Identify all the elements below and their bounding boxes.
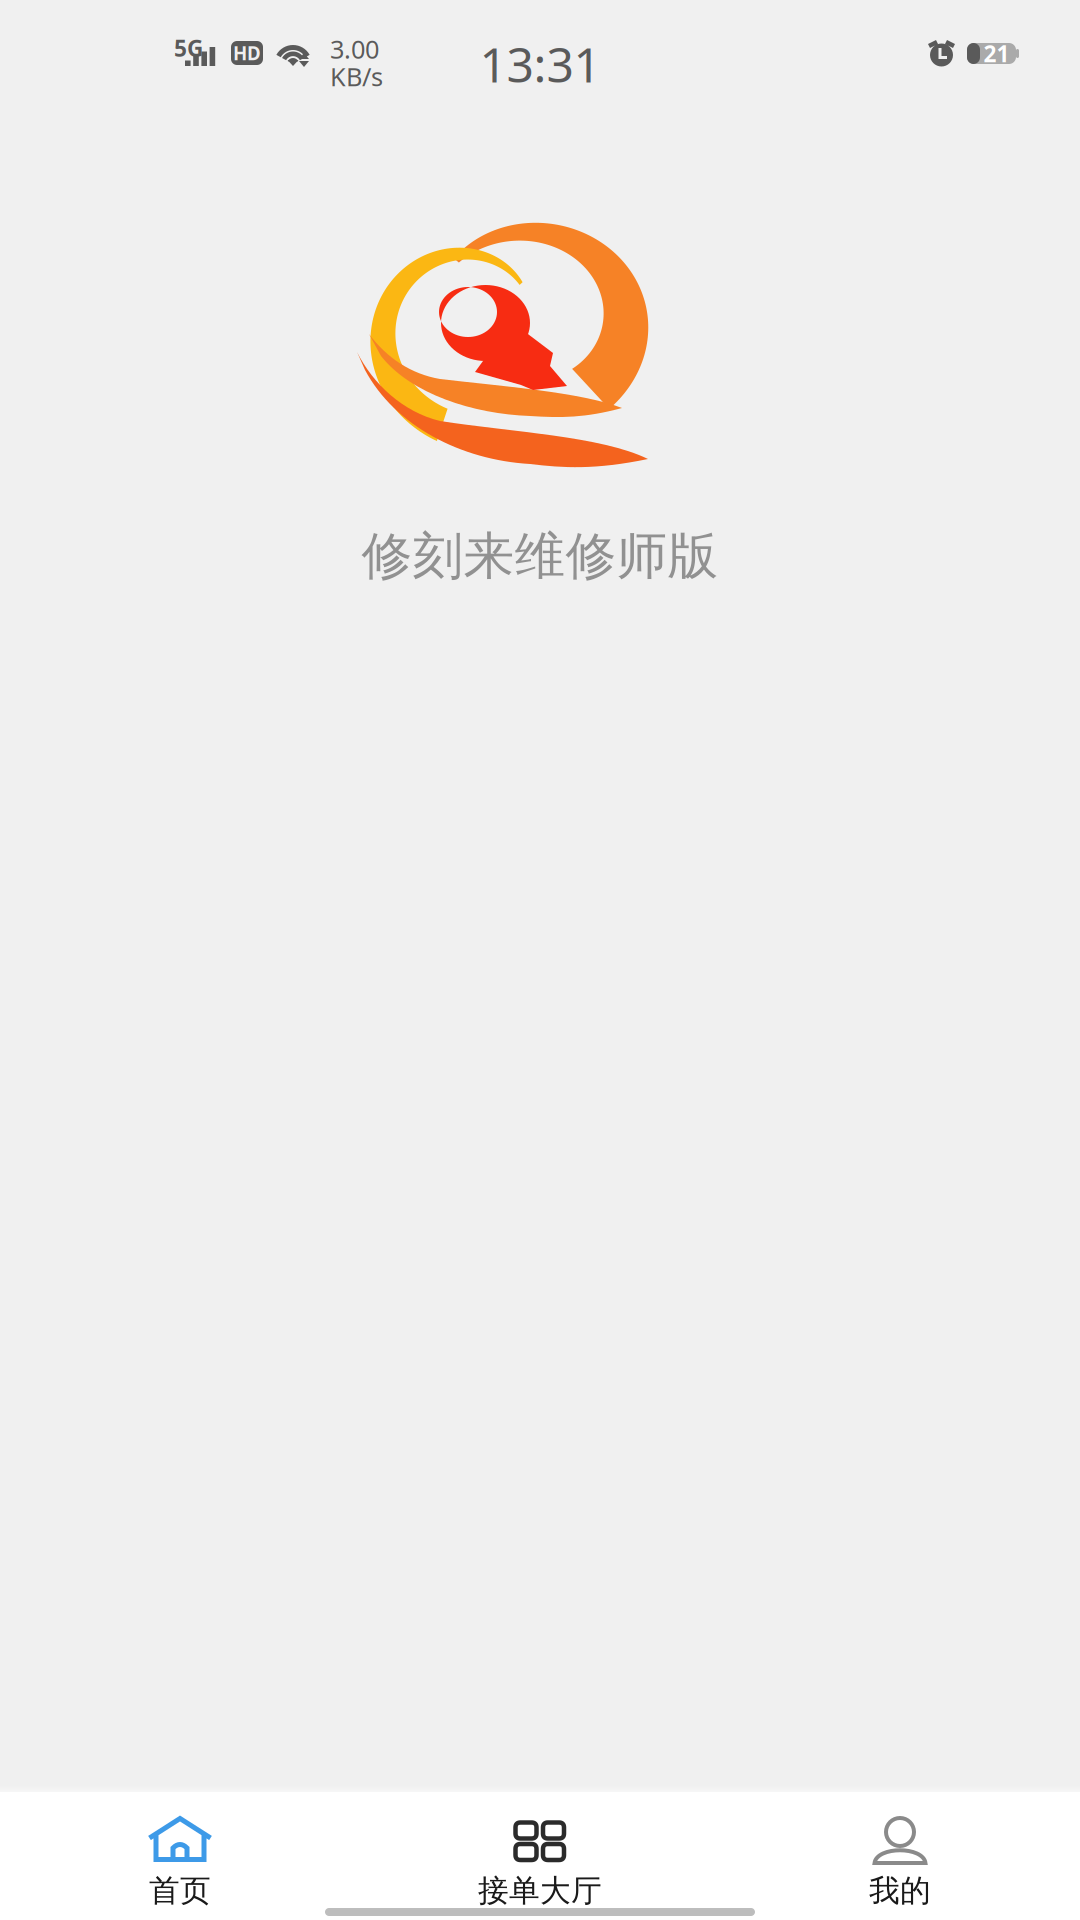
staticText: 首页 [149, 1872, 211, 1910]
staticText: KB/s [330, 60, 383, 93]
staticText: HD [233, 41, 261, 65]
staticText: 5G [174, 33, 203, 63]
button[interactable]: 我的 [720, 1792, 1080, 1914]
staticText: 13:31 [479, 32, 600, 96]
staticText: 我的 [869, 1872, 931, 1910]
button[interactable]: 接单大厅 [360, 1792, 720, 1914]
staticText: 修刻来维修师版 [361, 525, 718, 587]
button[interactable]: 首页 [0, 1792, 360, 1914]
staticText: 21 [983, 38, 1009, 68]
staticText: 接单大厅 [478, 1872, 602, 1910]
staticText: 3.00 [330, 32, 379, 66]
